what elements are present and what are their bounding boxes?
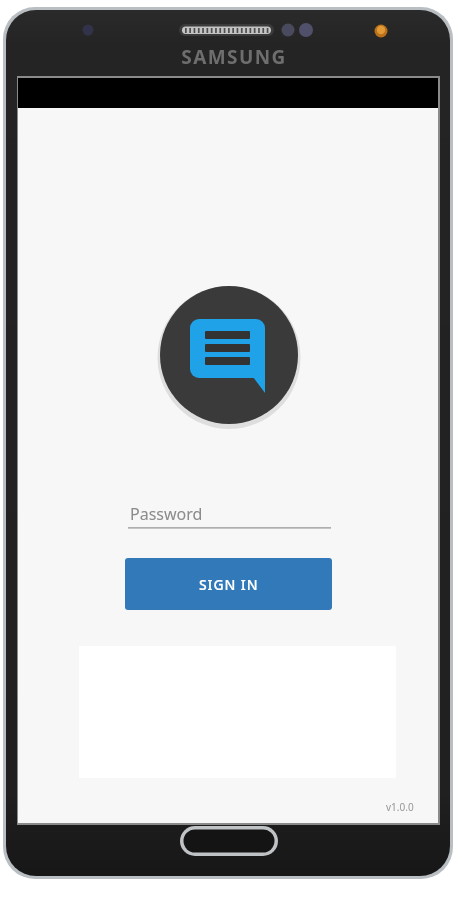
button[interactable]: Home <box>180 826 278 856</box>
staticText: Password <box>130 503 203 525</box>
staticText: SAMSUNG <box>0 44 468 70</box>
button[interactable]: Password <box>128 498 331 529</box>
staticText: SIGN IN <box>199 575 259 594</box>
button[interactable]: SIGN IN <box>125 558 332 610</box>
staticText: v1.0.0 <box>386 800 414 814</box>
